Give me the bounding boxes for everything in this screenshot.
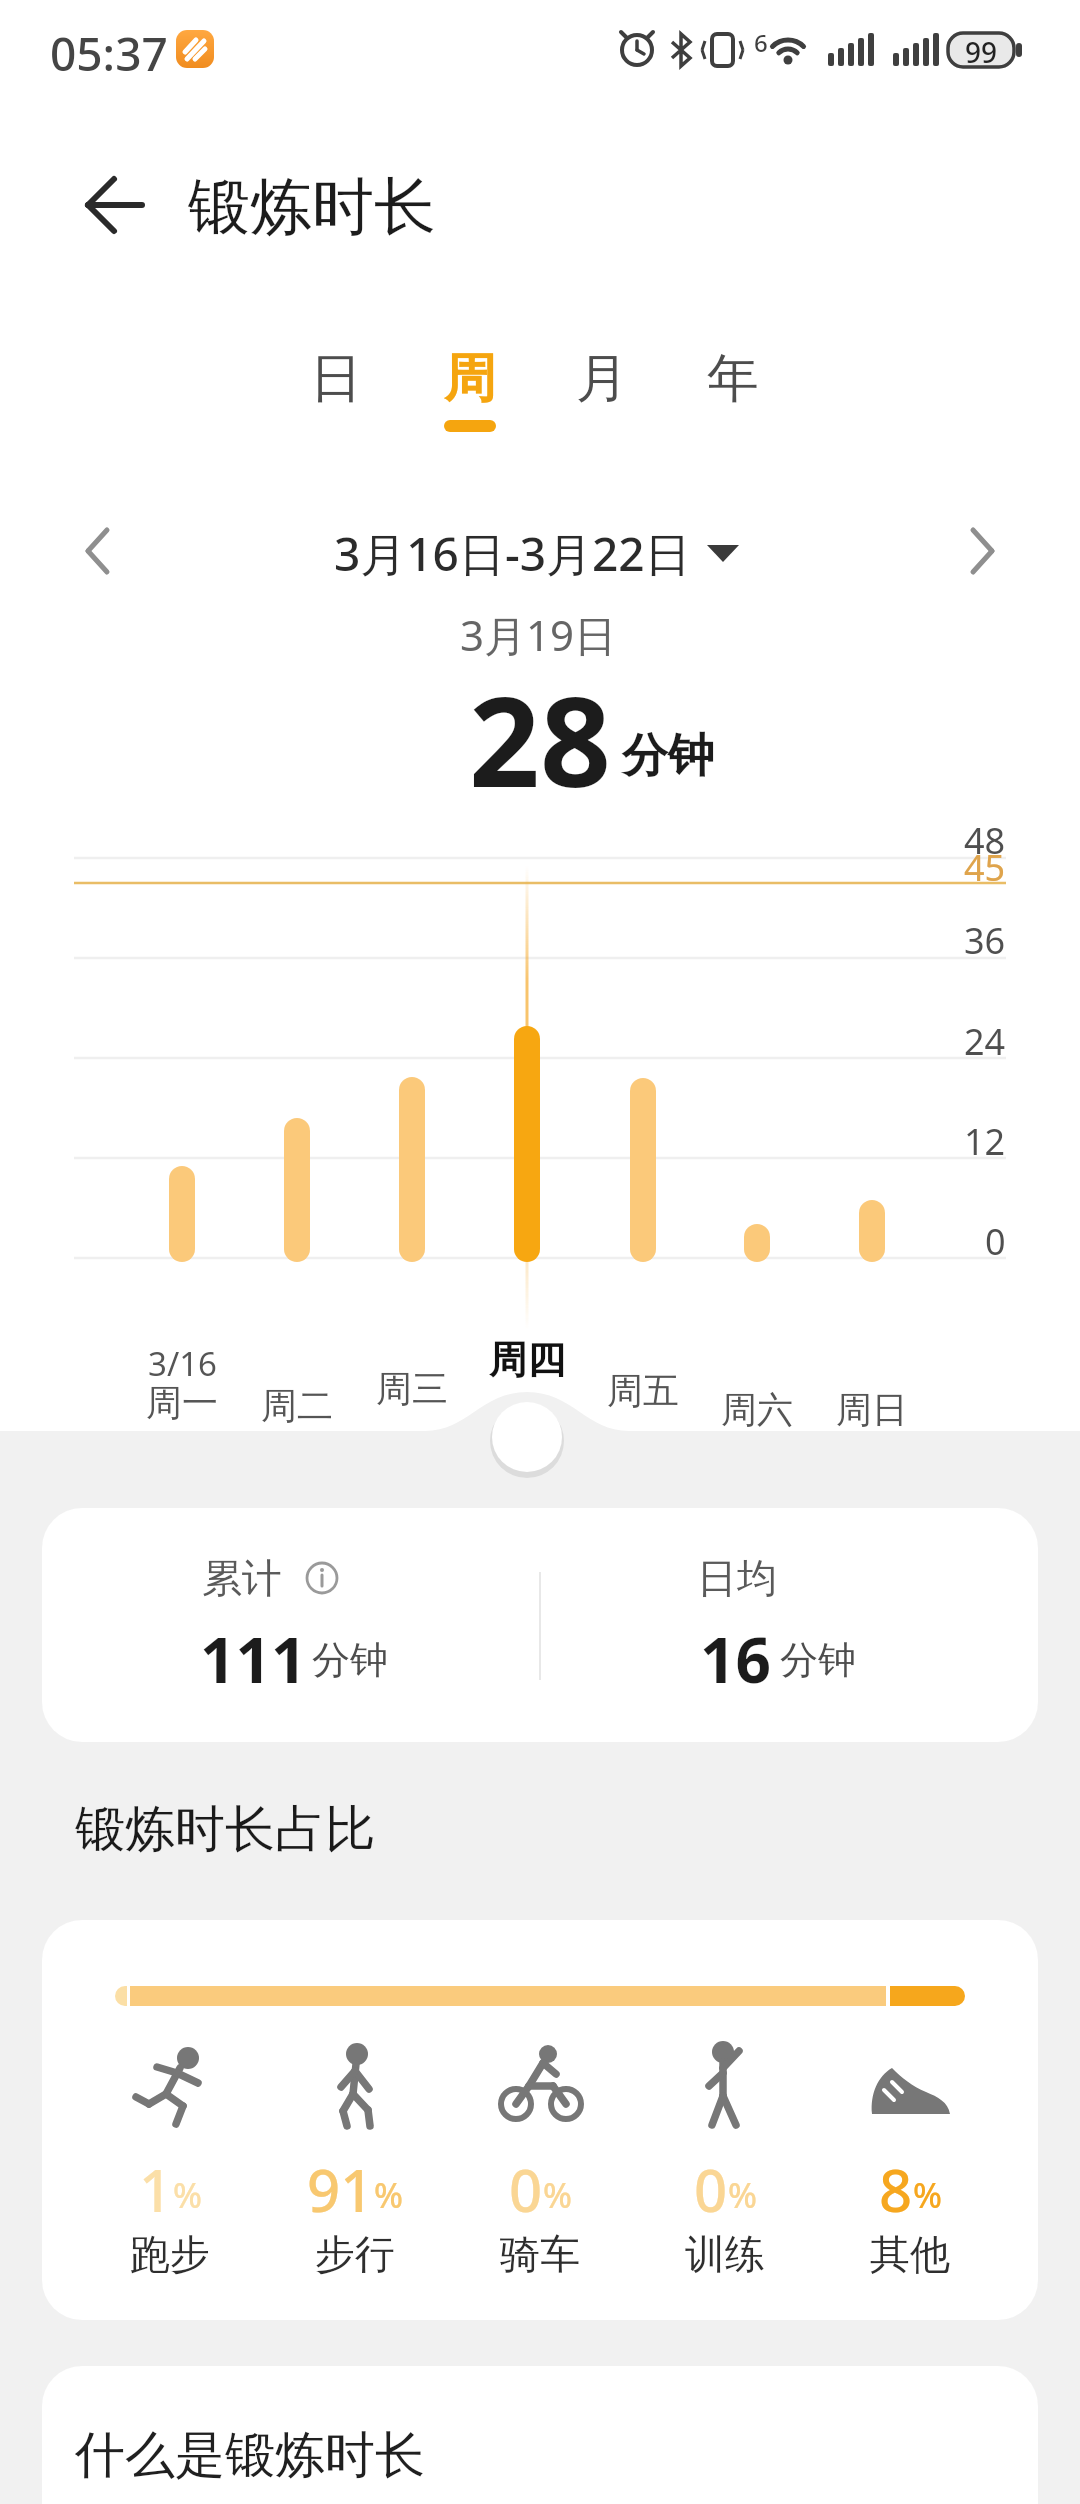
button[interactable]: 日 [276, 346, 396, 410]
staticText: % [728, 2172, 757, 2218]
button[interactable]: 周 [410, 346, 530, 410]
staticText: % [173, 2172, 202, 2218]
staticText: 24 [964, 1017, 1006, 1065]
staticText: 3月19日 [460, 606, 617, 662]
staticText: 48 [964, 816, 1006, 864]
staticText: 日 [310, 346, 362, 410]
staticText: 3月16日-3月22日 [334, 522, 691, 580]
staticText: 周 [444, 346, 496, 410]
staticText: 周四 [489, 1336, 565, 1380]
staticText: 分钟 [312, 1636, 388, 1684]
staticText: 其他 [870, 2229, 950, 2279]
staticText: 1 [139, 2150, 173, 2224]
button[interactable] [62, 516, 132, 586]
staticText: 周日 [836, 1387, 908, 1431]
staticText: 8 [879, 2150, 913, 2224]
button[interactable]: 年 [673, 346, 793, 410]
staticText: 分钟 [780, 1636, 856, 1684]
staticText: 周六 [721, 1387, 793, 1431]
staticText: 6 [754, 26, 768, 56]
staticText: 训练 [685, 2229, 765, 2279]
staticText: 周一 [146, 1380, 218, 1424]
staticText: 步行 [315, 2229, 395, 2279]
staticText: 0 [694, 2150, 728, 2224]
staticText: 99 [965, 33, 998, 67]
staticText: 骑车 [500, 2229, 580, 2279]
staticText: 累计 [202, 1553, 282, 1603]
staticText: % [913, 2172, 942, 2218]
button[interactable] [42, 2366, 1038, 2504]
button[interactable] [948, 516, 1018, 586]
staticText: 36 [964, 916, 1006, 964]
button[interactable]: 3月16日-3月22日 [292, 522, 732, 580]
staticText: 45 [964, 843, 1006, 891]
staticText: 月 [576, 346, 628, 410]
staticText: 3/16 [148, 1341, 217, 1385]
button[interactable]: 月 [542, 346, 662, 410]
staticText: % [543, 2172, 572, 2218]
staticText: 16 [700, 1617, 771, 1693]
staticText: 锻炼时长占比 [75, 1798, 375, 1858]
staticText: 周三 [376, 1366, 448, 1410]
button[interactable] [42, 1920, 1038, 2320]
staticText: 跑步 [130, 2229, 210, 2279]
staticText: 0 [985, 1217, 1006, 1265]
button[interactable] [492, 1402, 562, 1472]
staticText: 91 [307, 2150, 374, 2224]
staticText: 周二 [261, 1383, 333, 1427]
staticText: 年 [707, 346, 759, 410]
staticText: 111 [200, 1617, 307, 1693]
staticText: % [374, 2172, 403, 2218]
staticText: 分钟 [622, 727, 714, 785]
button[interactable] [42, 1508, 1038, 1742]
staticText: 12 [964, 1117, 1006, 1165]
staticText: 0 [509, 2150, 543, 2224]
button[interactable] [70, 172, 154, 238]
staticText: 什么是锻炼时长 [75, 2424, 425, 2484]
staticText: 日均 [697, 1553, 777, 1603]
staticText: 锻炼时长 [188, 168, 436, 244]
staticText: 周五 [607, 1368, 679, 1412]
staticText: 05:37 [50, 22, 168, 78]
staticText: 28 [469, 654, 611, 790]
